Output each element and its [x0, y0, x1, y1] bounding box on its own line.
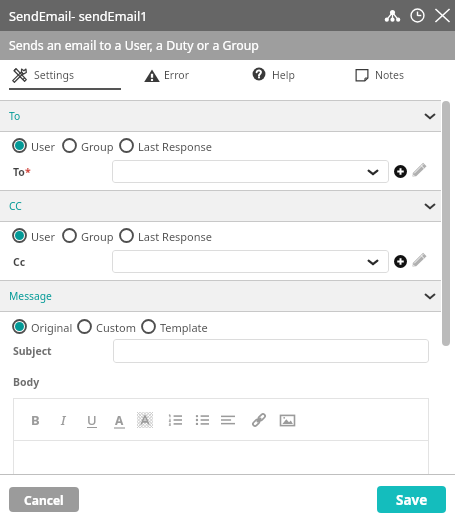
button[interactable]	[119, 226, 198, 246]
staticText: To	[13, 165, 25, 179]
button[interactable]	[119, 136, 198, 156]
button[interactable]: Cancel	[9, 487, 79, 512]
staticText: SendEmail- sendEmail1	[9, 7, 148, 24]
button[interactable]	[113, 339, 429, 363]
staticText: Cc	[13, 255, 26, 269]
button[interactable]: Edit	[411, 161, 428, 178]
staticText: I	[61, 411, 66, 429]
staticText: Message	[9, 289, 52, 303]
staticText: Settings	[34, 68, 74, 82]
button[interactable]: Close	[431, 4, 454, 27]
staticText: A	[115, 412, 124, 428]
button[interactable]	[62, 226, 113, 246]
button[interactable]: Message	[0, 280, 441, 312]
button[interactable]	[112, 160, 389, 183]
button[interactable]: Edit	[411, 251, 428, 268]
staticText: U	[87, 411, 97, 429]
staticText: Help	[272, 68, 295, 82]
button[interactable]: History	[406, 4, 429, 27]
staticText: CC	[9, 199, 22, 213]
staticText: Last Response	[138, 139, 213, 154]
button[interactable]: Link	[249, 410, 269, 430]
button[interactable]	[12, 317, 71, 337]
staticText: *	[25, 165, 31, 179]
button[interactable]	[77, 317, 135, 337]
button[interactable]: Numbered list	[165, 410, 185, 430]
staticText: Last Response	[138, 229, 213, 244]
button[interactable]	[141, 317, 192, 337]
staticText: User	[31, 139, 56, 154]
staticText: Group	[81, 139, 114, 154]
staticText: Notes	[375, 68, 405, 82]
button[interactable]: Bullet list	[192, 410, 212, 430]
button[interactable]: Image	[277, 410, 297, 430]
staticText: Custom	[96, 320, 136, 335]
staticText: B	[31, 411, 40, 429]
button[interactable]: Italic	[53, 410, 73, 430]
button[interactable]: Text color	[109, 410, 129, 430]
button[interactable]: Highlight	[135, 410, 155, 430]
staticText: Sends an email to a User, a Duty or a Gr…	[9, 37, 259, 54]
staticText: To	[9, 109, 21, 123]
staticText: Group	[81, 229, 114, 244]
button[interactable]	[12, 136, 56, 156]
staticText: Subject	[13, 344, 52, 358]
staticText: Error	[164, 68, 189, 82]
staticText: Save	[396, 491, 428, 509]
button[interactable]: To	[0, 100, 441, 132]
button[interactable]: Underline	[82, 410, 102, 430]
button[interactable]	[112, 250, 389, 273]
button[interactable]	[138, 60, 210, 88]
button[interactable]	[349, 60, 421, 88]
button[interactable]: CC	[0, 190, 441, 222]
staticText: Template	[160, 320, 208, 335]
button[interactable]: Save	[377, 486, 446, 513]
staticText: User	[31, 229, 56, 244]
button[interactable]: Add	[393, 164, 408, 179]
staticText: Cancel	[24, 492, 64, 508]
button[interactable]: Bold	[25, 410, 45, 430]
button[interactable]	[12, 226, 56, 246]
staticText: Body	[13, 375, 40, 389]
button[interactable]	[246, 60, 318, 88]
button[interactable]: Add	[393, 254, 408, 269]
button[interactable]: Align	[218, 410, 238, 430]
button[interactable]	[62, 136, 113, 156]
button[interactable]: Hierarchy	[381, 4, 404, 27]
button[interactable]	[5, 60, 80, 88]
staticText: Original	[31, 320, 73, 335]
